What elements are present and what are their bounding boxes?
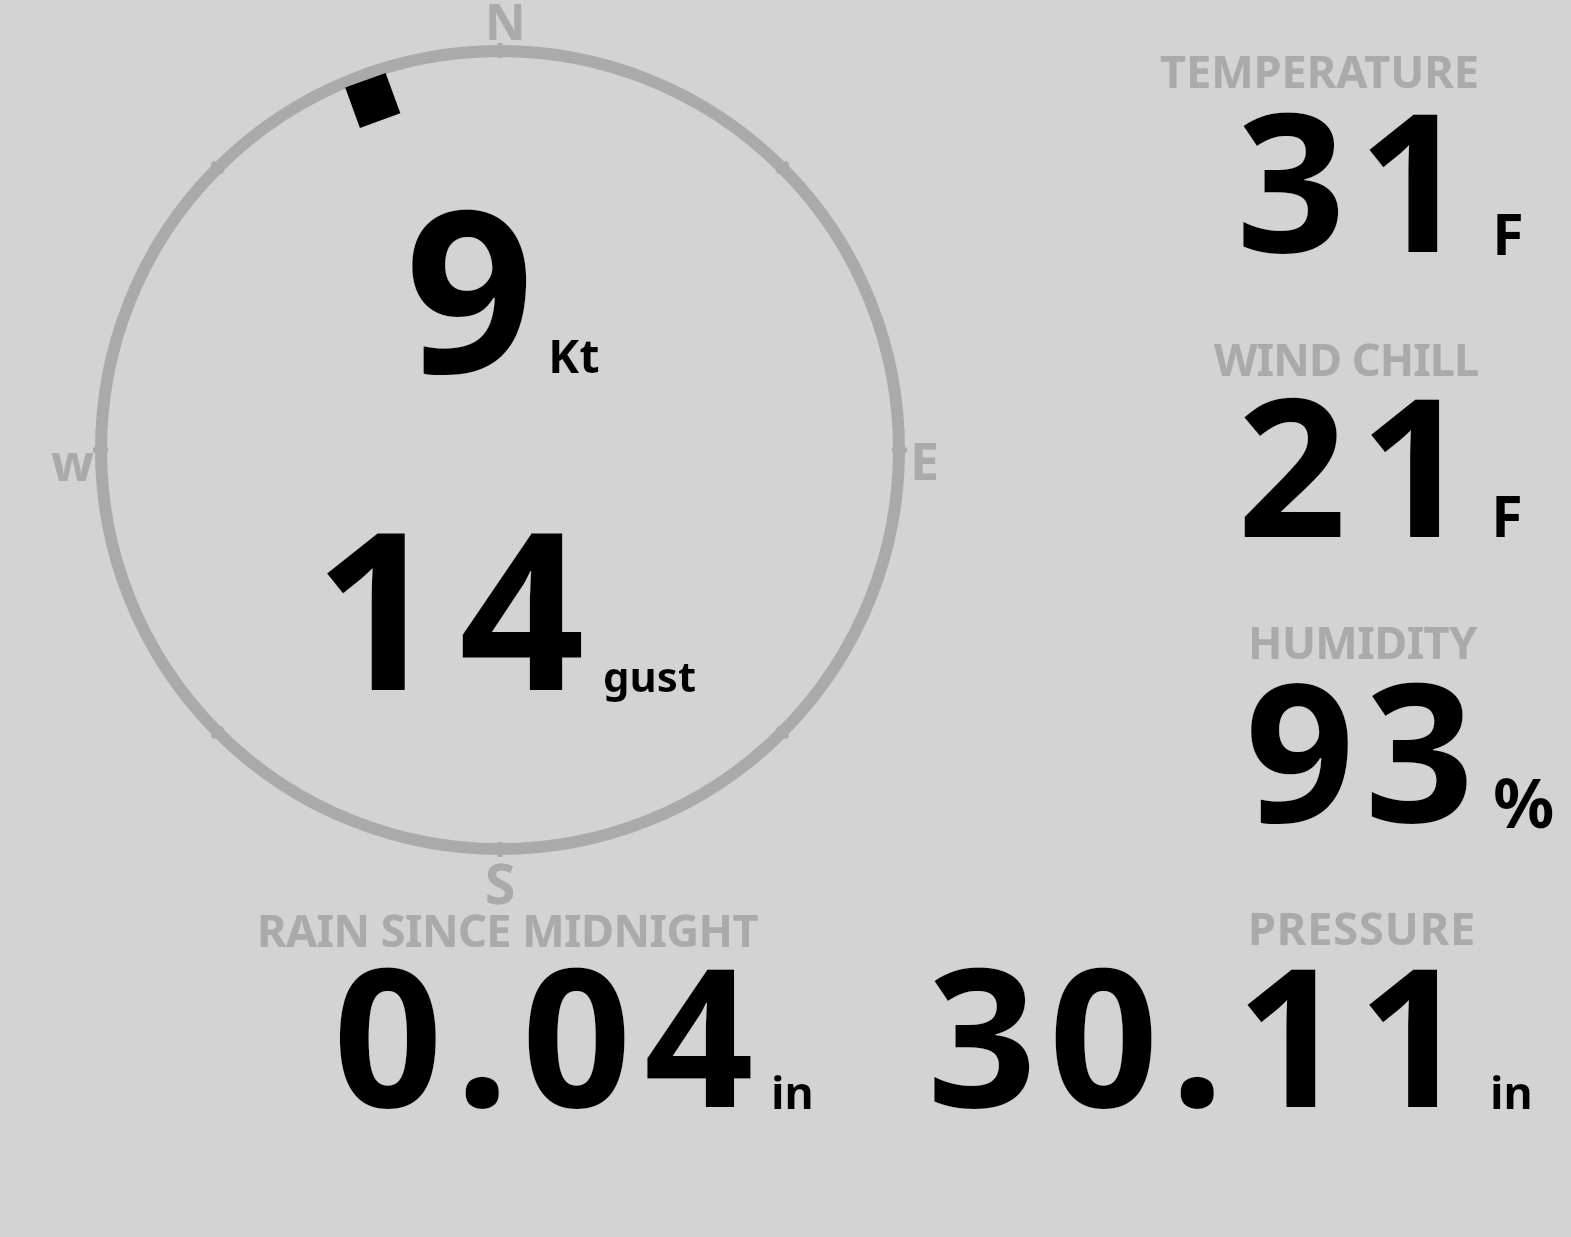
button[interactable]: Pressure 30.11 inches: [900, 895, 1550, 1120]
staticText: WIND CHILL: [1214, 328, 1479, 389]
staticText: 21: [1237, 332, 1483, 594]
staticText: in: [771, 1061, 814, 1122]
staticText: F: [1492, 193, 1524, 272]
staticText: HUMIDITY: [1248, 611, 1477, 672]
staticText: 0.04: [333, 902, 767, 1164]
staticText: gust: [603, 647, 697, 704]
staticText: %: [1493, 755, 1555, 848]
staticText: 31: [1236, 47, 1480, 309]
staticText: S: [485, 845, 516, 920]
staticText: w: [51, 428, 94, 496]
button[interactable]: Humidity 93 percent: [1150, 610, 1560, 835]
staticText: 93: [1245, 617, 1485, 879]
staticText: RAIN SINCE MIDNIGHT: [257, 899, 758, 960]
staticText: N: [485, 0, 526, 55]
staticText: 9: [405, 131, 535, 439]
button[interactable]: Wind chill 21 degrees F: [1150, 325, 1560, 550]
staticText: PRESSURE: [1248, 897, 1477, 958]
button[interactable]: Rain since midnight 0.04 inches: [250, 895, 830, 1120]
staticText: E: [910, 424, 940, 495]
button[interactable]: Wind 9 knots, gusting 14: [100, 50, 900, 850]
staticText: 14: [314, 455, 604, 755]
staticText: TEMPERATURE: [1160, 40, 1479, 101]
staticText: Kt: [548, 323, 600, 387]
button[interactable]: Temperature 31 degrees F: [1150, 40, 1560, 265]
staticText: 30.11: [927, 902, 1480, 1164]
staticText: in: [1490, 1061, 1533, 1122]
staticText: F: [1491, 475, 1523, 554]
